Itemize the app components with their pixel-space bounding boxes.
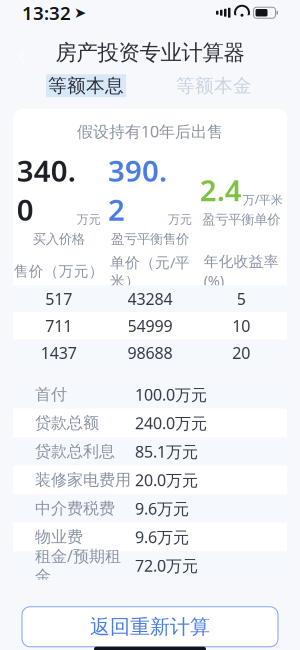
staticText: 中介费税费 — [35, 499, 115, 518]
staticText: 装修家电费用 — [35, 470, 131, 490]
staticText: 2.4 — [200, 170, 242, 209]
staticText: 等额本金 — [176, 74, 252, 97]
staticText: 年化收益率(%) — [204, 252, 279, 290]
staticText: 单价（元/平米） — [110, 252, 190, 290]
staticText: 盈亏平衡单价 — [202, 211, 280, 228]
staticText: 517 — [45, 288, 72, 309]
staticText: 9.6万元 — [135, 526, 189, 548]
staticText: 万元 — [168, 212, 192, 227]
staticText: 返回重新计算 — [90, 614, 210, 639]
staticText: 万元 — [77, 212, 101, 227]
staticText: 390.2 — [108, 151, 167, 229]
staticText: 买入价格 — [33, 231, 85, 247]
staticText: 85.1万元 — [135, 441, 198, 462]
staticText: 54999 — [127, 315, 172, 336]
staticText: 1437 — [41, 342, 77, 363]
staticText: 9.6万元 — [135, 498, 189, 519]
staticText: 首付 — [35, 385, 67, 404]
staticText: 等额本息 — [48, 74, 124, 97]
staticText: 房产投资专业计算器 — [55, 40, 244, 66]
staticText: 100.0万元 — [135, 384, 207, 405]
staticText: 20 — [232, 342, 250, 363]
button[interactable]: 等额本金 — [150, 74, 278, 97]
staticText: 240.0万元 — [135, 412, 207, 434]
staticText: 售价（万元） — [14, 262, 104, 280]
staticText: 20.0万元 — [135, 469, 198, 491]
staticText: 盈亏平衡售价 — [111, 231, 189, 247]
staticText: 711 — [45, 315, 72, 336]
staticText: 5 — [237, 288, 246, 309]
staticText: 13:32 — [22, 0, 71, 25]
staticText: ➤ — [74, 4, 86, 21]
button[interactable]: 返回重新计算 — [22, 607, 278, 647]
staticText: 贷款总额 — [35, 413, 99, 433]
staticText: 72.0万元 — [135, 555, 198, 576]
staticText: 万/平米 — [243, 191, 283, 207]
staticText: 租金/预期租金 — [35, 545, 121, 586]
button[interactable]: 等额本息 — [22, 74, 150, 97]
staticText: 贷款总利息 — [35, 442, 115, 461]
staticText: 10 — [232, 315, 250, 336]
staticText: 假设持有10年后出售 — [77, 121, 223, 142]
staticText: 物业费 — [35, 527, 83, 547]
staticText: 98688 — [127, 342, 172, 363]
staticText: 340.0 — [17, 151, 76, 229]
staticText: 43284 — [127, 288, 172, 309]
